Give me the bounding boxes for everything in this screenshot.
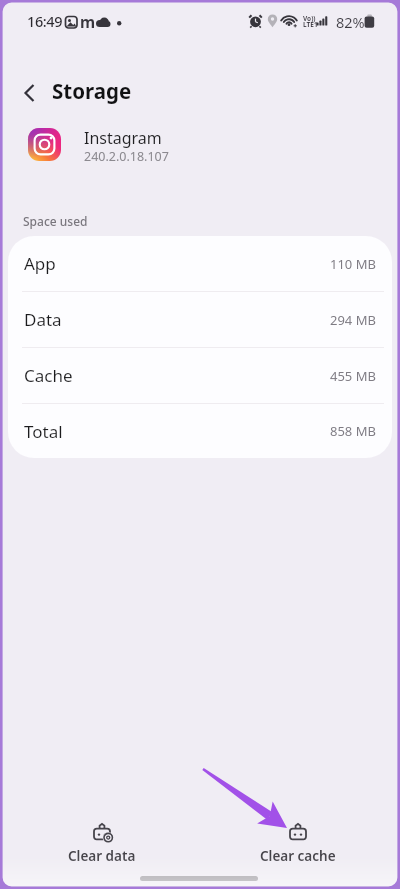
button[interactable]: App [8, 236, 392, 292]
button[interactable]: Total [8, 404, 392, 458]
staticText: Space used [23, 213, 88, 229]
staticText: m [80, 11, 96, 32]
staticText: Instagram [84, 127, 162, 149]
staticText: 455 MB [330, 367, 376, 385]
button[interactable]: Clear cache [238, 820, 358, 882]
button[interactable]: Cache [8, 348, 392, 404]
staticText: Clear data [68, 847, 136, 865]
staticText: Clear cache [260, 847, 336, 865]
button[interactable]: Clear data [42, 820, 162, 882]
staticText: App [24, 252, 56, 275]
staticText: Cache [24, 364, 73, 387]
staticText: Vo)) [303, 14, 316, 23]
staticText: 110 MB [330, 255, 376, 273]
staticText: 82% [336, 12, 365, 32]
staticText: Total [24, 420, 63, 443]
button[interactable]: Data [8, 292, 392, 348]
staticText: 16:49 [27, 11, 63, 31]
staticText: Data [24, 308, 62, 331]
staticText: 858 MB [330, 422, 376, 440]
staticText: 240.2.0.18.107 [84, 148, 169, 165]
button[interactable] [12, 76, 44, 108]
staticText: Storage [52, 77, 132, 105]
staticText: LTE1 [303, 20, 318, 29]
staticText: 294 MB [330, 311, 376, 329]
